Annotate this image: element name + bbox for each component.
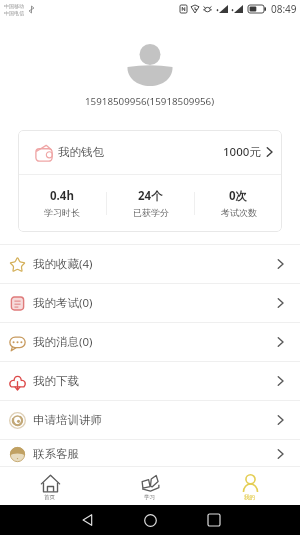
button[interactable]: 我的下载 [0, 362, 300, 401]
button[interactable]: 0.4h [18, 175, 106, 232]
button[interactable]: 申请培训讲师 [0, 401, 300, 440]
staticText: 24个 [138, 188, 163, 204]
button[interactable]: 0次 [195, 175, 282, 232]
staticText: 我的考试(0) [33, 295, 93, 311]
staticText: 已获学分 [133, 207, 169, 218]
button[interactable]: 我的消息(0) [0, 323, 300, 362]
button[interactable]: 我的收藏(4) [0, 245, 300, 284]
staticText: 考试次数 [221, 207, 257, 218]
staticText: 08:49 [271, 2, 297, 16]
button[interactable]: 我的钱包 [18, 130, 282, 174]
staticText: 0次 [229, 188, 248, 204]
staticText: 申请培训讲师 [33, 413, 102, 427]
staticText: 中国电信 [4, 10, 24, 16]
button[interactable]: 24个 [107, 175, 194, 232]
staticText: 0.4h [50, 188, 74, 204]
staticText: 15918509956(15918509956) [85, 95, 215, 108]
button[interactable]: Back [70, 505, 104, 535]
button[interactable]: Recents [197, 505, 231, 535]
staticText: 中国移动 [4, 3, 24, 9]
staticText: 1000元 [223, 144, 261, 160]
button[interactable]: 我的考试(0) [0, 284, 300, 323]
staticText: 首页 [44, 494, 56, 501]
staticText: 学习时长 [44, 207, 80, 218]
button[interactable]: 首页 [0, 467, 100, 505]
staticText: 我的收藏(4) [33, 256, 93, 272]
button[interactable]: Home [133, 505, 167, 535]
button[interactable]: 我的 [200, 467, 300, 505]
staticText: 学习 [144, 494, 156, 501]
staticText: 联系客服 [33, 447, 79, 461]
staticText: 我的钱包 [58, 145, 104, 159]
staticText: 我的下载 [33, 374, 79, 388]
button[interactable]: 学习 [100, 467, 200, 505]
staticText: 我的消息(0) [33, 334, 93, 350]
button[interactable]: 联系客服 [0, 440, 300, 467]
staticText: 我的 [244, 494, 256, 501]
